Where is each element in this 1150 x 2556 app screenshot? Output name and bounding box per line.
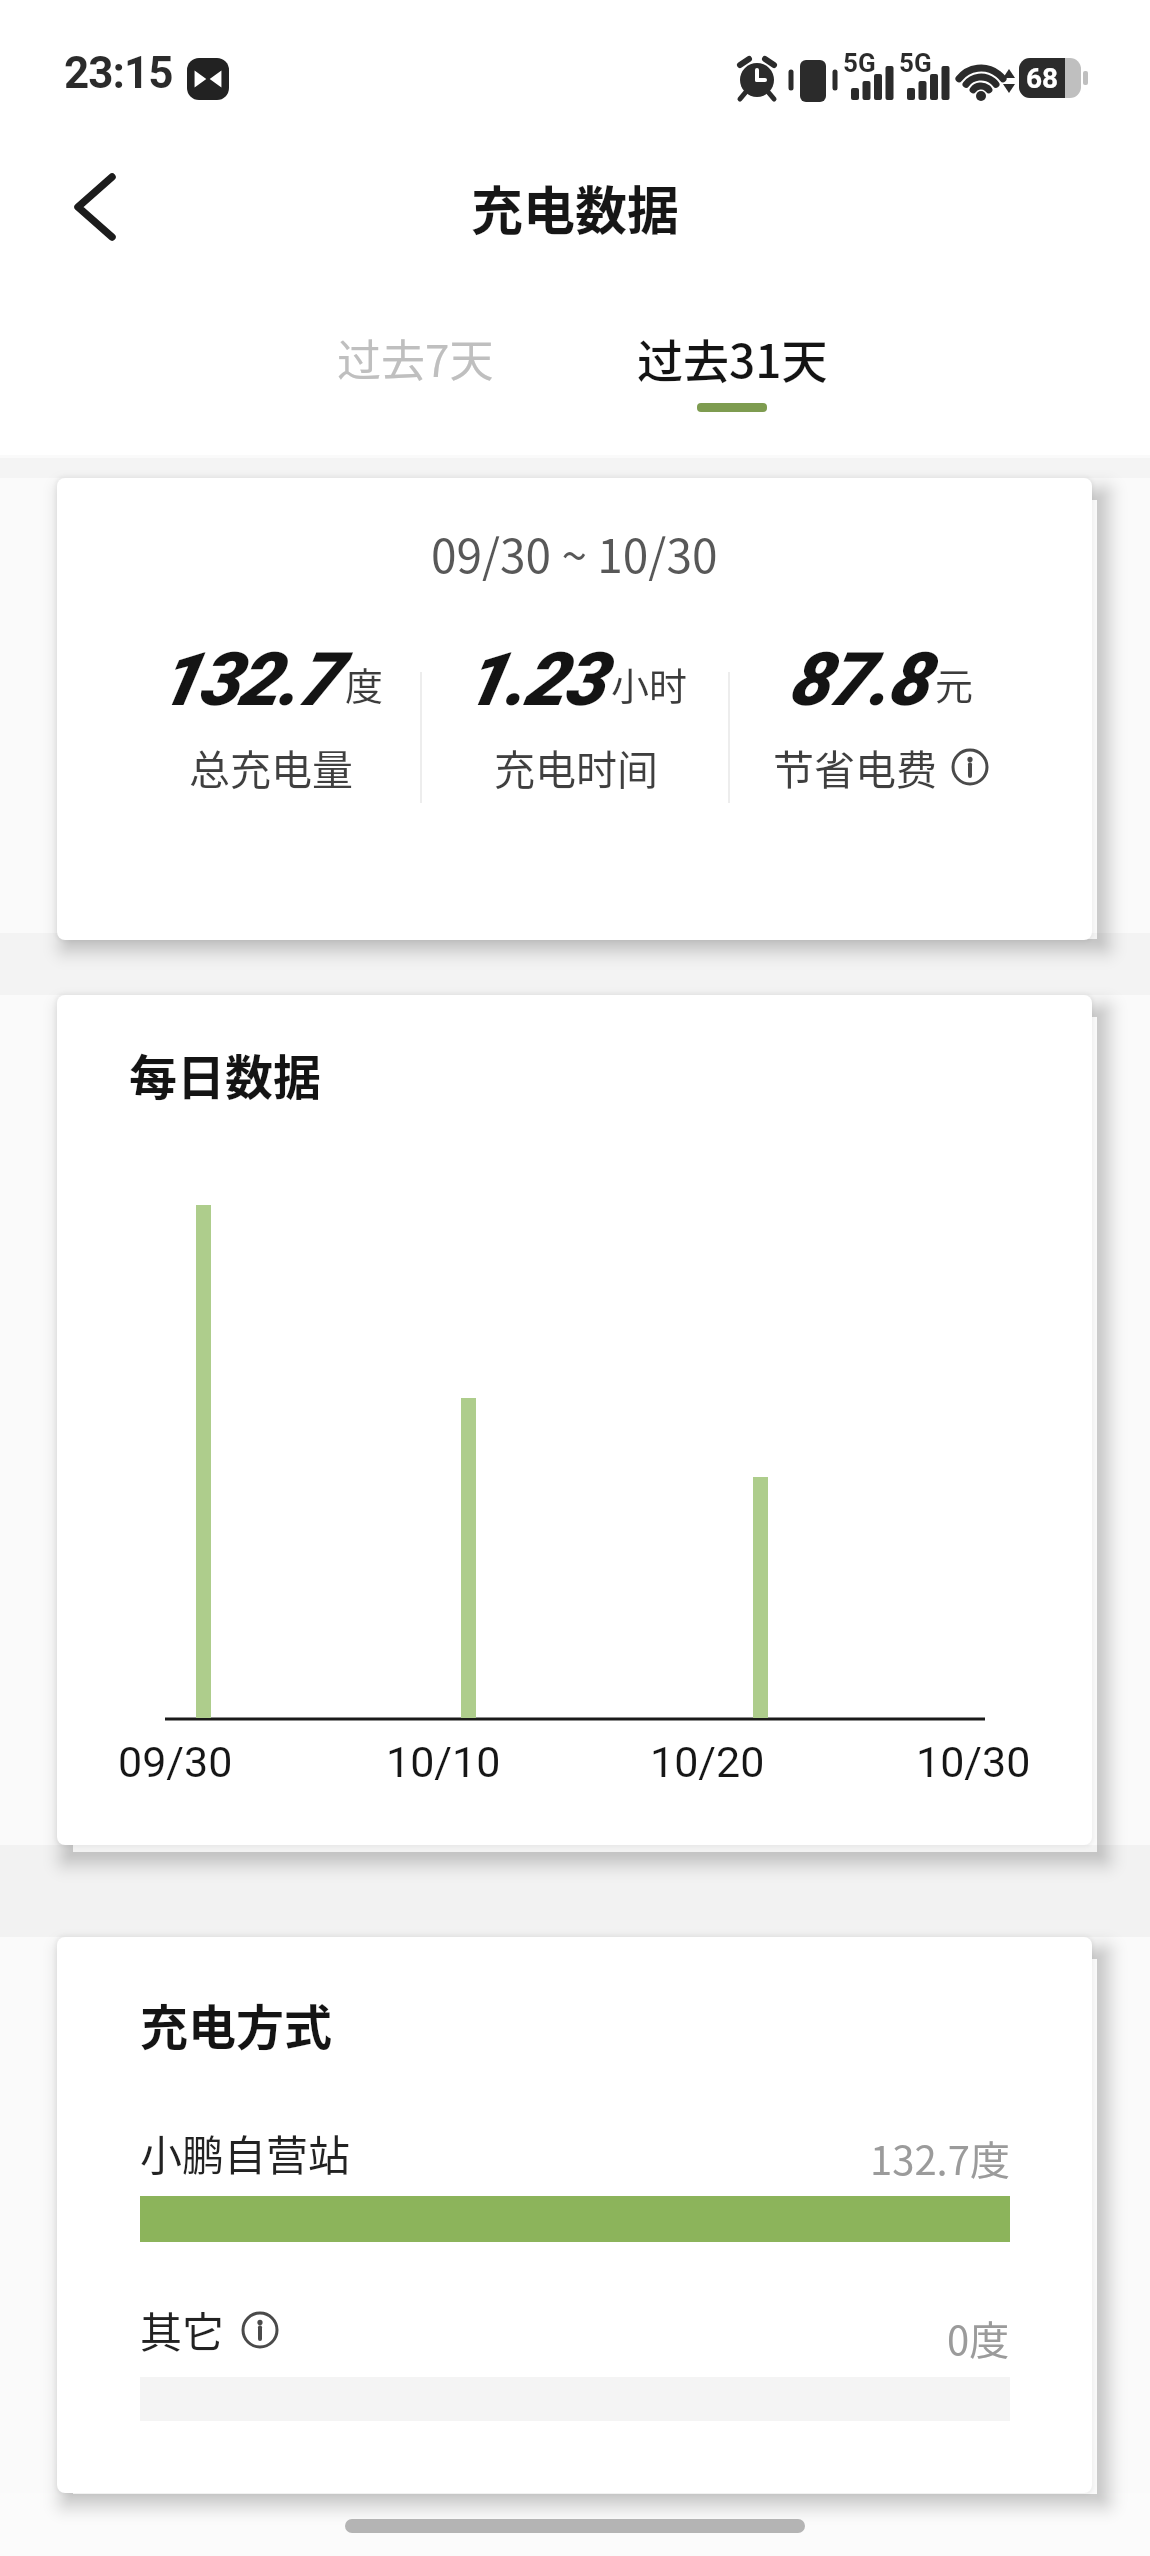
staticText: 充电数据 [471,170,680,240]
staticText: 度 [345,656,384,711]
staticText: 10/10 [386,1737,501,1787]
button[interactable]: 过去7天 [310,325,520,391]
staticText: 68 [1026,62,1059,95]
staticText: 过去7天 [337,326,494,390]
staticText: 节省电费 [773,737,937,796]
staticText: 充电时间 [494,737,658,796]
staticText: 5G [899,48,932,78]
staticText: 132.7度 [870,2129,1010,2187]
staticText: 其它 [140,2299,225,2360]
staticText: 5G [843,48,876,78]
button[interactable] [60,172,130,242]
staticText: 过去31天 [637,325,828,391]
staticText: 小鹏自营站 [140,2122,351,2183]
staticText: 09/30 ~ 10/30 [431,520,718,587]
staticText: 09/30 [118,1737,233,1787]
staticText: 0度 [947,2309,1010,2367]
staticText: 小时 [611,656,688,711]
staticText: 1.23 [464,636,603,723]
staticText: 87.8 [788,636,927,723]
staticText: 10/30 [916,1737,1031,1787]
staticText: 元 [935,656,974,711]
staticText: 132.7 [158,636,337,723]
staticText: 充电方式 [140,1989,333,2059]
button[interactable]: 过去31天 [620,325,844,391]
staticText: 10/20 [650,1737,765,1787]
staticText: 每日数据 [129,1039,322,1109]
staticText: 总充电量 [189,737,353,796]
staticText: 23:15 [64,47,173,99]
